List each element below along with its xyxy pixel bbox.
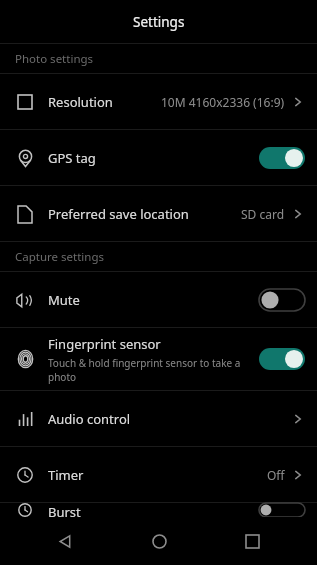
staticText: Photo settings [15, 51, 94, 67]
staticText: Fingerprint sensor [48, 335, 161, 353]
button[interactable]: Audio control [0, 391, 317, 446]
button[interactable]: Home [131, 517, 187, 565]
button[interactable]: Back [37, 517, 93, 565]
staticText: Burst [48, 503, 81, 517]
button[interactable]: Timer [0, 447, 317, 502]
button[interactable]: Recents [224, 517, 280, 565]
staticText: Touch & hold fingerprint sensor to take … [48, 356, 259, 384]
button[interactable]: Resolution [0, 74, 317, 129]
staticText: Mute [48, 291, 80, 309]
button[interactable]: Mute [0, 272, 317, 327]
button[interactable]: GPS tag [0, 130, 317, 185]
staticText: 10M 4160x2336 (16:9) [161, 94, 285, 110]
staticText: Timer [48, 466, 84, 484]
staticText: Capture settings [15, 249, 104, 265]
button[interactable]: Fingerprint sensor [0, 328, 317, 390]
staticText: Off [267, 467, 285, 483]
staticText: GPS tag [48, 149, 96, 167]
staticText: Preferred save location [48, 205, 189, 223]
staticText: Settings [133, 13, 185, 31]
button[interactable]: Burst [0, 503, 317, 517]
staticText: SD card [241, 206, 285, 222]
staticText: Audio control [48, 410, 131, 428]
staticText: Resolution [48, 93, 113, 111]
button[interactable]: Preferred save location [0, 186, 317, 241]
